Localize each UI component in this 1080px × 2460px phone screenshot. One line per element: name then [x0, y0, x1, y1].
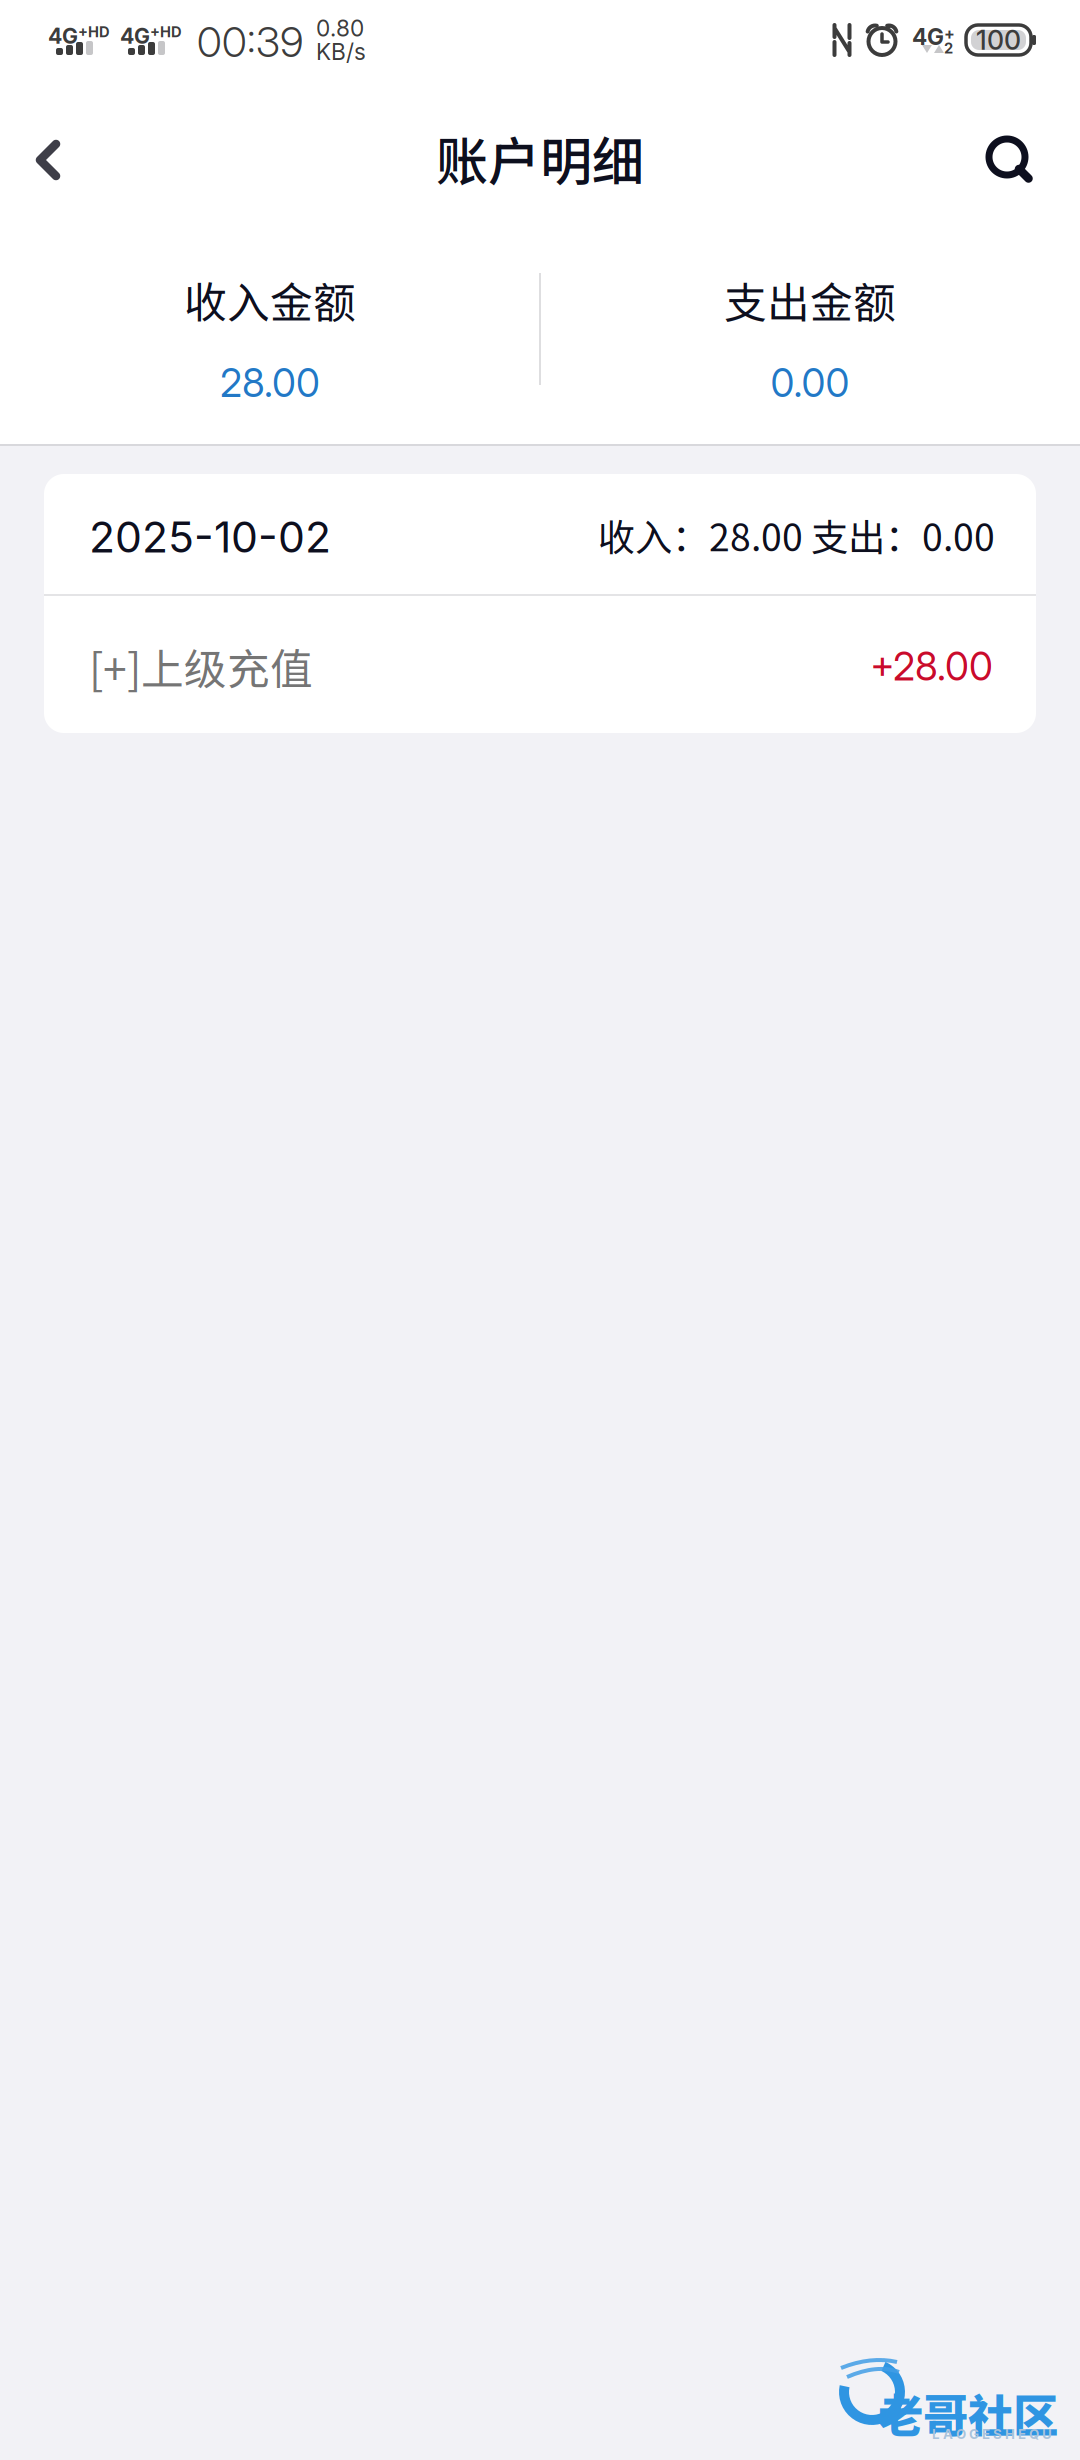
staticText: 4G — [912, 23, 944, 50]
staticText: 100 — [976, 24, 1021, 56]
staticText: +HD — [150, 23, 182, 41]
staticText: +28.00 — [870, 643, 993, 690]
staticText: 收入：28.00 支出：0.00 — [598, 508, 995, 562]
staticText: 28.00 — [220, 360, 320, 406]
staticText: + — [944, 24, 955, 43]
staticText: 账户明细 — [436, 120, 644, 196]
staticText: 2025-10-02 — [89, 511, 331, 563]
staticText: 老哥社区 — [878, 2380, 1058, 2446]
staticText: 4G — [120, 23, 150, 49]
staticText: 2 — [944, 39, 953, 57]
staticText: 支出金额 — [724, 269, 896, 331]
button[interactable]: 2025-10-02 — [44, 474, 1036, 594]
button[interactable]: Search — [959, 96, 1063, 220]
staticText: 4G — [48, 23, 78, 49]
button[interactable]: Back — [0, 96, 96, 220]
staticText: L A O G E S H E Q U — [932, 2426, 1052, 2442]
staticText: 0.80 — [316, 15, 364, 42]
staticText: 00:39 — [197, 17, 303, 67]
staticText: 0.00 — [770, 360, 849, 406]
staticText: KB/s — [316, 38, 366, 65]
staticText: [+]上级充值 — [89, 636, 313, 697]
button[interactable]: [+]上级充值 — [44, 596, 1036, 733]
staticText: +HD — [78, 23, 110, 41]
staticText: 收入金额 — [184, 269, 356, 331]
